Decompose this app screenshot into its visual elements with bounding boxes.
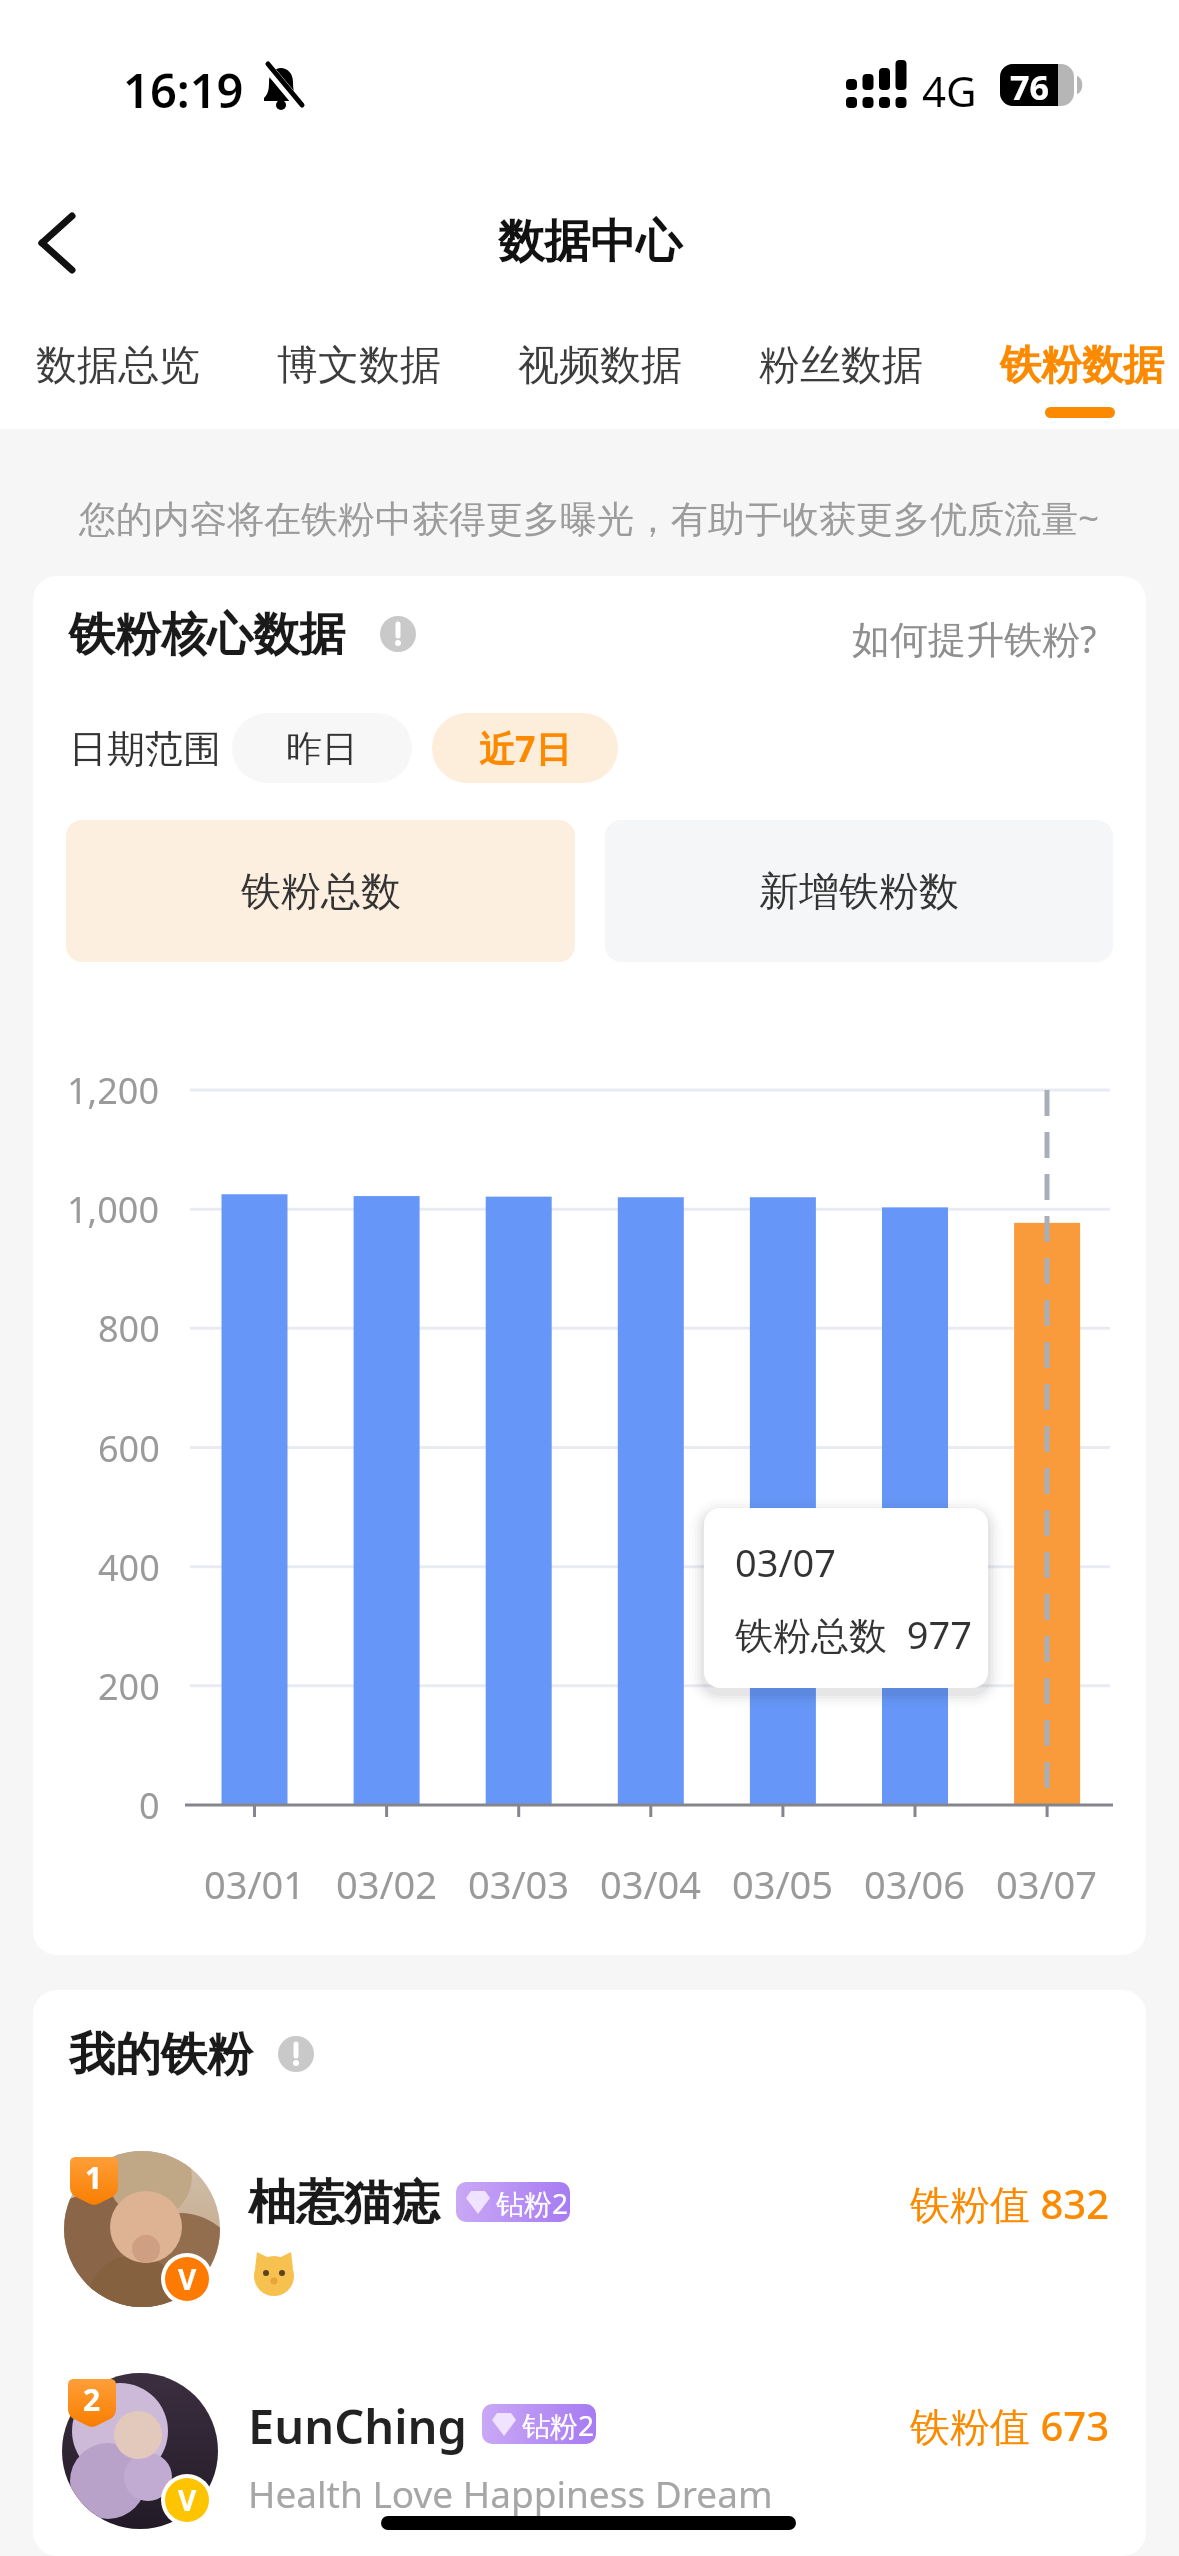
button[interactable] xyxy=(20,200,100,290)
staticText: 1 xyxy=(85,2157,103,2198)
staticText: 03/03 xyxy=(468,1858,570,1910)
staticText: 您的内容将在铁粉中获得更多曝光，有助于收获更多优质流量~ xyxy=(79,492,1100,543)
staticText: 03/07 xyxy=(996,1858,1098,1910)
staticText: 如何提升铁粉? xyxy=(852,612,1097,664)
staticText: Health Love Happiness Dream xyxy=(248,2468,773,2518)
staticText: EunChing xyxy=(248,2394,467,2458)
staticText: V xyxy=(178,2481,197,2519)
staticText: 我的铁粉 xyxy=(69,2026,253,2084)
staticText: 16:19 xyxy=(123,58,244,122)
button[interactable]: 视频数据 xyxy=(518,340,682,392)
staticText: 铁粉核心数据 xyxy=(69,606,345,664)
button[interactable]: 数据总览 xyxy=(36,340,200,392)
staticText: 日期范围 xyxy=(69,725,221,773)
staticText: 铁粉值 832 xyxy=(910,2176,1110,2231)
staticText: 铁粉总数 977 xyxy=(735,1608,972,1660)
staticText: 2 xyxy=(83,2379,101,2420)
staticText: 03/06 xyxy=(864,1858,966,1910)
staticText: 昨日 xyxy=(286,726,358,771)
staticText: 1,200 xyxy=(67,1066,160,1115)
staticText: 1,000 xyxy=(67,1185,160,1234)
staticText: 铁粉值 673 xyxy=(910,2398,1110,2453)
staticText: 视频数据 xyxy=(518,340,682,392)
button[interactable]: 如何提升铁粉? xyxy=(0,612,1097,664)
staticText: 400 xyxy=(98,1543,160,1592)
staticText: 800 xyxy=(98,1304,160,1353)
staticText: V xyxy=(178,2260,197,2298)
staticText: 03/04 xyxy=(600,1858,702,1910)
button[interactable]: 粉丝数据 xyxy=(759,340,923,392)
staticText: 柚惹猫痣 xyxy=(248,2173,440,2233)
staticText: 600 xyxy=(98,1424,160,1473)
staticText: 博文数据 xyxy=(277,340,441,392)
button[interactable] xyxy=(33,2130,1146,2330)
staticText: 76 xyxy=(1010,64,1049,106)
staticText: 03/05 xyxy=(732,1858,834,1910)
button[interactable]: 铁粉数据 xyxy=(1000,340,1164,392)
button[interactable]: 新增铁粉数 xyxy=(605,820,1113,962)
staticText: 钻粉2 xyxy=(522,2406,595,2444)
staticText: 03/01 xyxy=(204,1858,306,1910)
button[interactable]: 博文数据 xyxy=(277,340,441,392)
staticText: 4G xyxy=(922,62,977,119)
staticText: 新增铁粉数 xyxy=(759,866,959,916)
staticText: 铁粉总数 xyxy=(241,866,401,916)
button[interactable]: 近7日 xyxy=(432,713,618,783)
staticText: 钻粉2 xyxy=(496,2184,569,2222)
staticText: 03/07 xyxy=(735,1536,837,1588)
button[interactable] xyxy=(33,2350,1146,2550)
staticText: 铁粉数据 xyxy=(1000,340,1164,392)
staticText: 0 xyxy=(139,1781,160,1830)
staticText: 数据中心 xyxy=(498,213,682,271)
staticText: 200 xyxy=(98,1662,160,1711)
staticText: 03/02 xyxy=(336,1858,438,1910)
staticText: 粉丝数据 xyxy=(759,340,923,392)
button[interactable]: 铁粉总数 xyxy=(66,820,575,962)
staticText: 近7日 xyxy=(479,724,572,773)
button[interactable]: 昨日 xyxy=(232,713,412,783)
staticText: 数据总览 xyxy=(36,340,200,392)
